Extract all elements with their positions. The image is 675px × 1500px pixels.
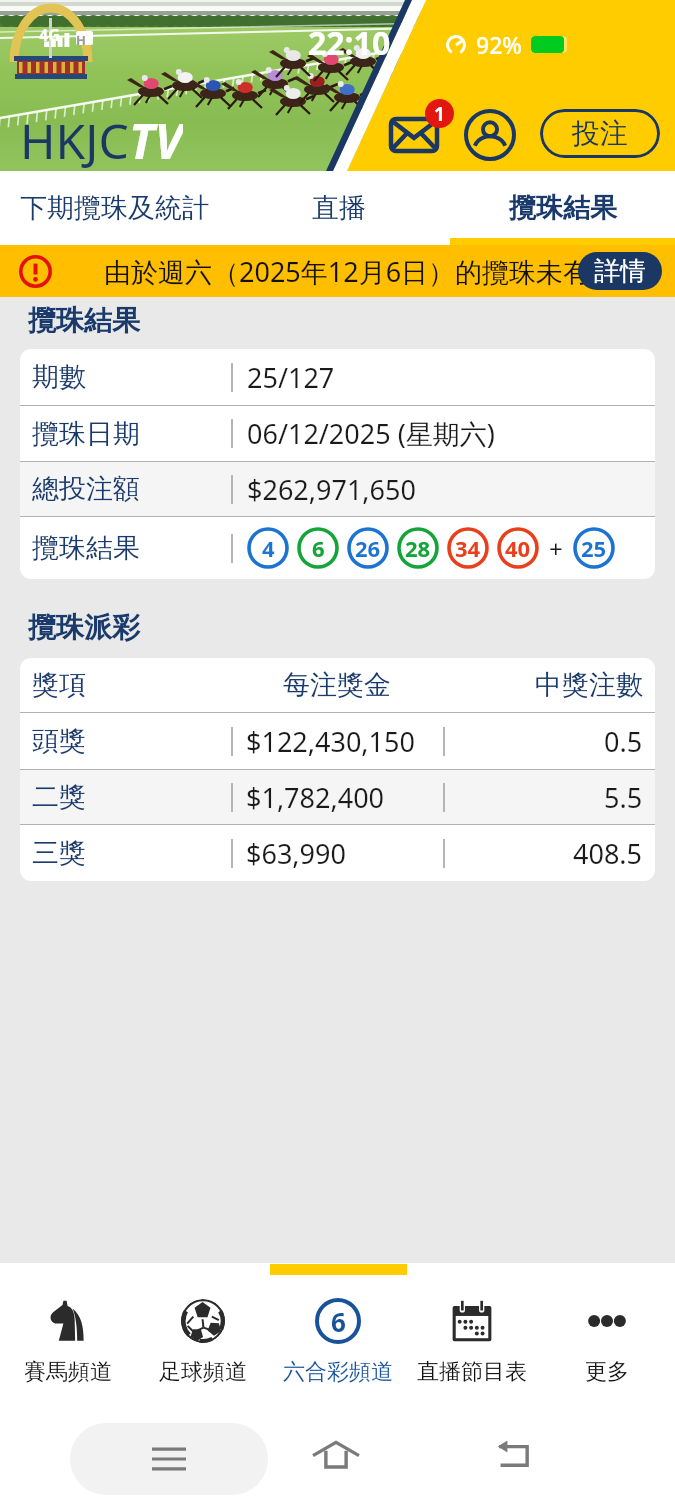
button[interactable]: 頭獎 xyxy=(20,713,655,769)
staticText: 攬珠結果 xyxy=(509,191,617,225)
staticText: $122,430,150 xyxy=(246,723,415,760)
button[interactable]: 下期攬珠及統計 xyxy=(0,171,228,245)
staticText: 40 xyxy=(505,533,531,563)
staticText: 六合彩頻道 xyxy=(283,1358,393,1386)
staticText: $262,971,650 xyxy=(247,471,416,508)
staticText: 攬珠派彩 xyxy=(28,610,140,645)
button[interactable]: 三獎 xyxy=(20,825,655,881)
button[interactable]: 詳情 xyxy=(578,252,662,290)
staticText: 22:10 xyxy=(308,21,391,65)
staticText: $63,990 xyxy=(246,835,346,872)
staticText: 中獎注數 xyxy=(535,668,643,702)
staticText: 92% xyxy=(476,29,522,60)
button[interactable]: 6 xyxy=(270,1299,405,1388)
staticText: 28 xyxy=(405,533,431,563)
staticText: 下期攬珠及統計 xyxy=(20,191,209,225)
button[interactable]: 攬珠結果 xyxy=(20,517,655,579)
staticText: 攬珠結果 xyxy=(28,303,140,338)
button[interactable]: 攬珠日期 xyxy=(20,406,655,461)
staticText: 期數 xyxy=(32,360,86,394)
staticText: 足球頻道 xyxy=(159,1358,247,1386)
button[interactable]: Recents xyxy=(70,1423,268,1495)
staticText: 0.5 xyxy=(604,723,643,760)
staticText: 更多 xyxy=(585,1358,629,1386)
staticText: 攬珠日期 xyxy=(32,417,140,451)
staticText: 總投注額 xyxy=(32,472,140,506)
staticText: 每注獎金 xyxy=(283,668,391,702)
button[interactable]: 期數 xyxy=(20,349,655,405)
staticText: 25 xyxy=(581,533,607,563)
staticText: 6 xyxy=(312,533,325,563)
staticText: 直播節目表 xyxy=(417,1358,527,1386)
staticText: 賽馬頻道 xyxy=(24,1358,112,1386)
staticText: 由於週六（2025年12月6日）的攬珠未有攪出 xyxy=(104,253,645,290)
button[interactable]: 更多 xyxy=(539,1299,675,1388)
staticText: 5.5 xyxy=(604,779,643,816)
button[interactable]: 投注 xyxy=(540,109,660,158)
staticText: 獎項 xyxy=(32,668,86,702)
staticText: 詳情 xyxy=(594,255,646,288)
button[interactable]: Back xyxy=(496,1440,534,1470)
button[interactable]: 賽馬頻道 xyxy=(0,1299,135,1388)
button[interactable]: Messages xyxy=(384,97,454,157)
staticText: 直播 xyxy=(312,191,366,225)
button[interactable]: Account xyxy=(464,109,516,161)
staticText: + xyxy=(549,532,563,565)
staticText: 攬珠結果 xyxy=(32,531,140,565)
staticText: 34 xyxy=(455,533,481,563)
staticText: TV xyxy=(129,108,183,171)
staticText: HD xyxy=(76,31,93,45)
button[interactable]: 獎項 xyxy=(20,658,655,712)
staticText: 頭獎 xyxy=(32,724,86,758)
button[interactable]: 攬珠結果 xyxy=(450,171,675,245)
staticText: 26 xyxy=(355,533,381,563)
staticText: 4G xyxy=(39,24,60,46)
staticText: 25/127 xyxy=(247,359,335,396)
staticText: 投注 xyxy=(572,116,628,151)
staticText: 二獎 xyxy=(32,780,86,814)
button[interactable]: 直播 xyxy=(228,171,450,245)
staticText: 三獎 xyxy=(32,836,86,870)
button[interactable]: 二獎 xyxy=(20,770,655,824)
staticText: 6 xyxy=(331,1304,346,1339)
button[interactable]: 總投注額 xyxy=(20,462,655,516)
button[interactable]: 足球頻道 xyxy=(135,1299,270,1388)
staticText: HKJC xyxy=(20,108,129,171)
staticText: 1 xyxy=(434,101,445,127)
staticText: 4 xyxy=(262,533,275,563)
button[interactable]: 直播節目表 xyxy=(405,1299,539,1388)
staticText: 408.5 xyxy=(573,835,643,872)
staticText: $1,782,400 xyxy=(246,779,385,816)
staticText: 06/12/2025 (星期六) xyxy=(247,415,495,452)
button[interactable]: Home xyxy=(313,1440,359,1470)
